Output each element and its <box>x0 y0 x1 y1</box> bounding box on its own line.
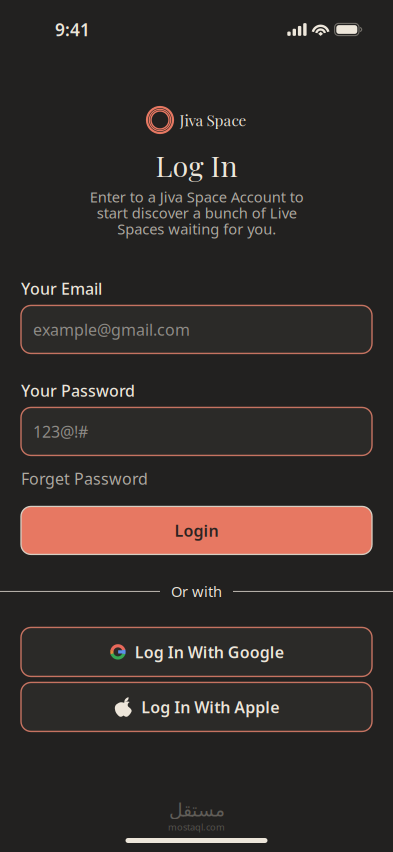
staticText: Your Email <box>21 278 102 299</box>
button[interactable]: example@gmail.com <box>21 305 372 353</box>
staticText: example@gmail.com <box>33 319 190 340</box>
staticText: Forget Password <box>21 468 148 489</box>
staticText: Your Password <box>21 380 135 401</box>
staticText: Enter to a Jiva Space Account to start d… <box>89 187 303 238</box>
button[interactable]: Log In With Google <box>21 627 372 676</box>
staticText: Log In With Google <box>135 641 284 662</box>
staticText: مستقل <box>168 799 224 821</box>
staticText: 9:41 <box>55 18 90 41</box>
staticText: mostaql.com <box>168 821 225 833</box>
button[interactable]: Log In With Apple <box>21 682 372 731</box>
staticText: Login <box>174 520 218 541</box>
staticText: Log In <box>155 146 237 184</box>
button[interactable]: Login <box>21 506 372 554</box>
staticText: Or with <box>171 582 222 601</box>
button[interactable]: Forget Password <box>21 470 148 486</box>
staticText: 123@!# <box>33 421 88 442</box>
staticText: Log In With Apple <box>141 696 279 717</box>
staticText: Jiva Space <box>179 110 246 130</box>
button[interactable]: 123@!# <box>21 407 372 455</box>
